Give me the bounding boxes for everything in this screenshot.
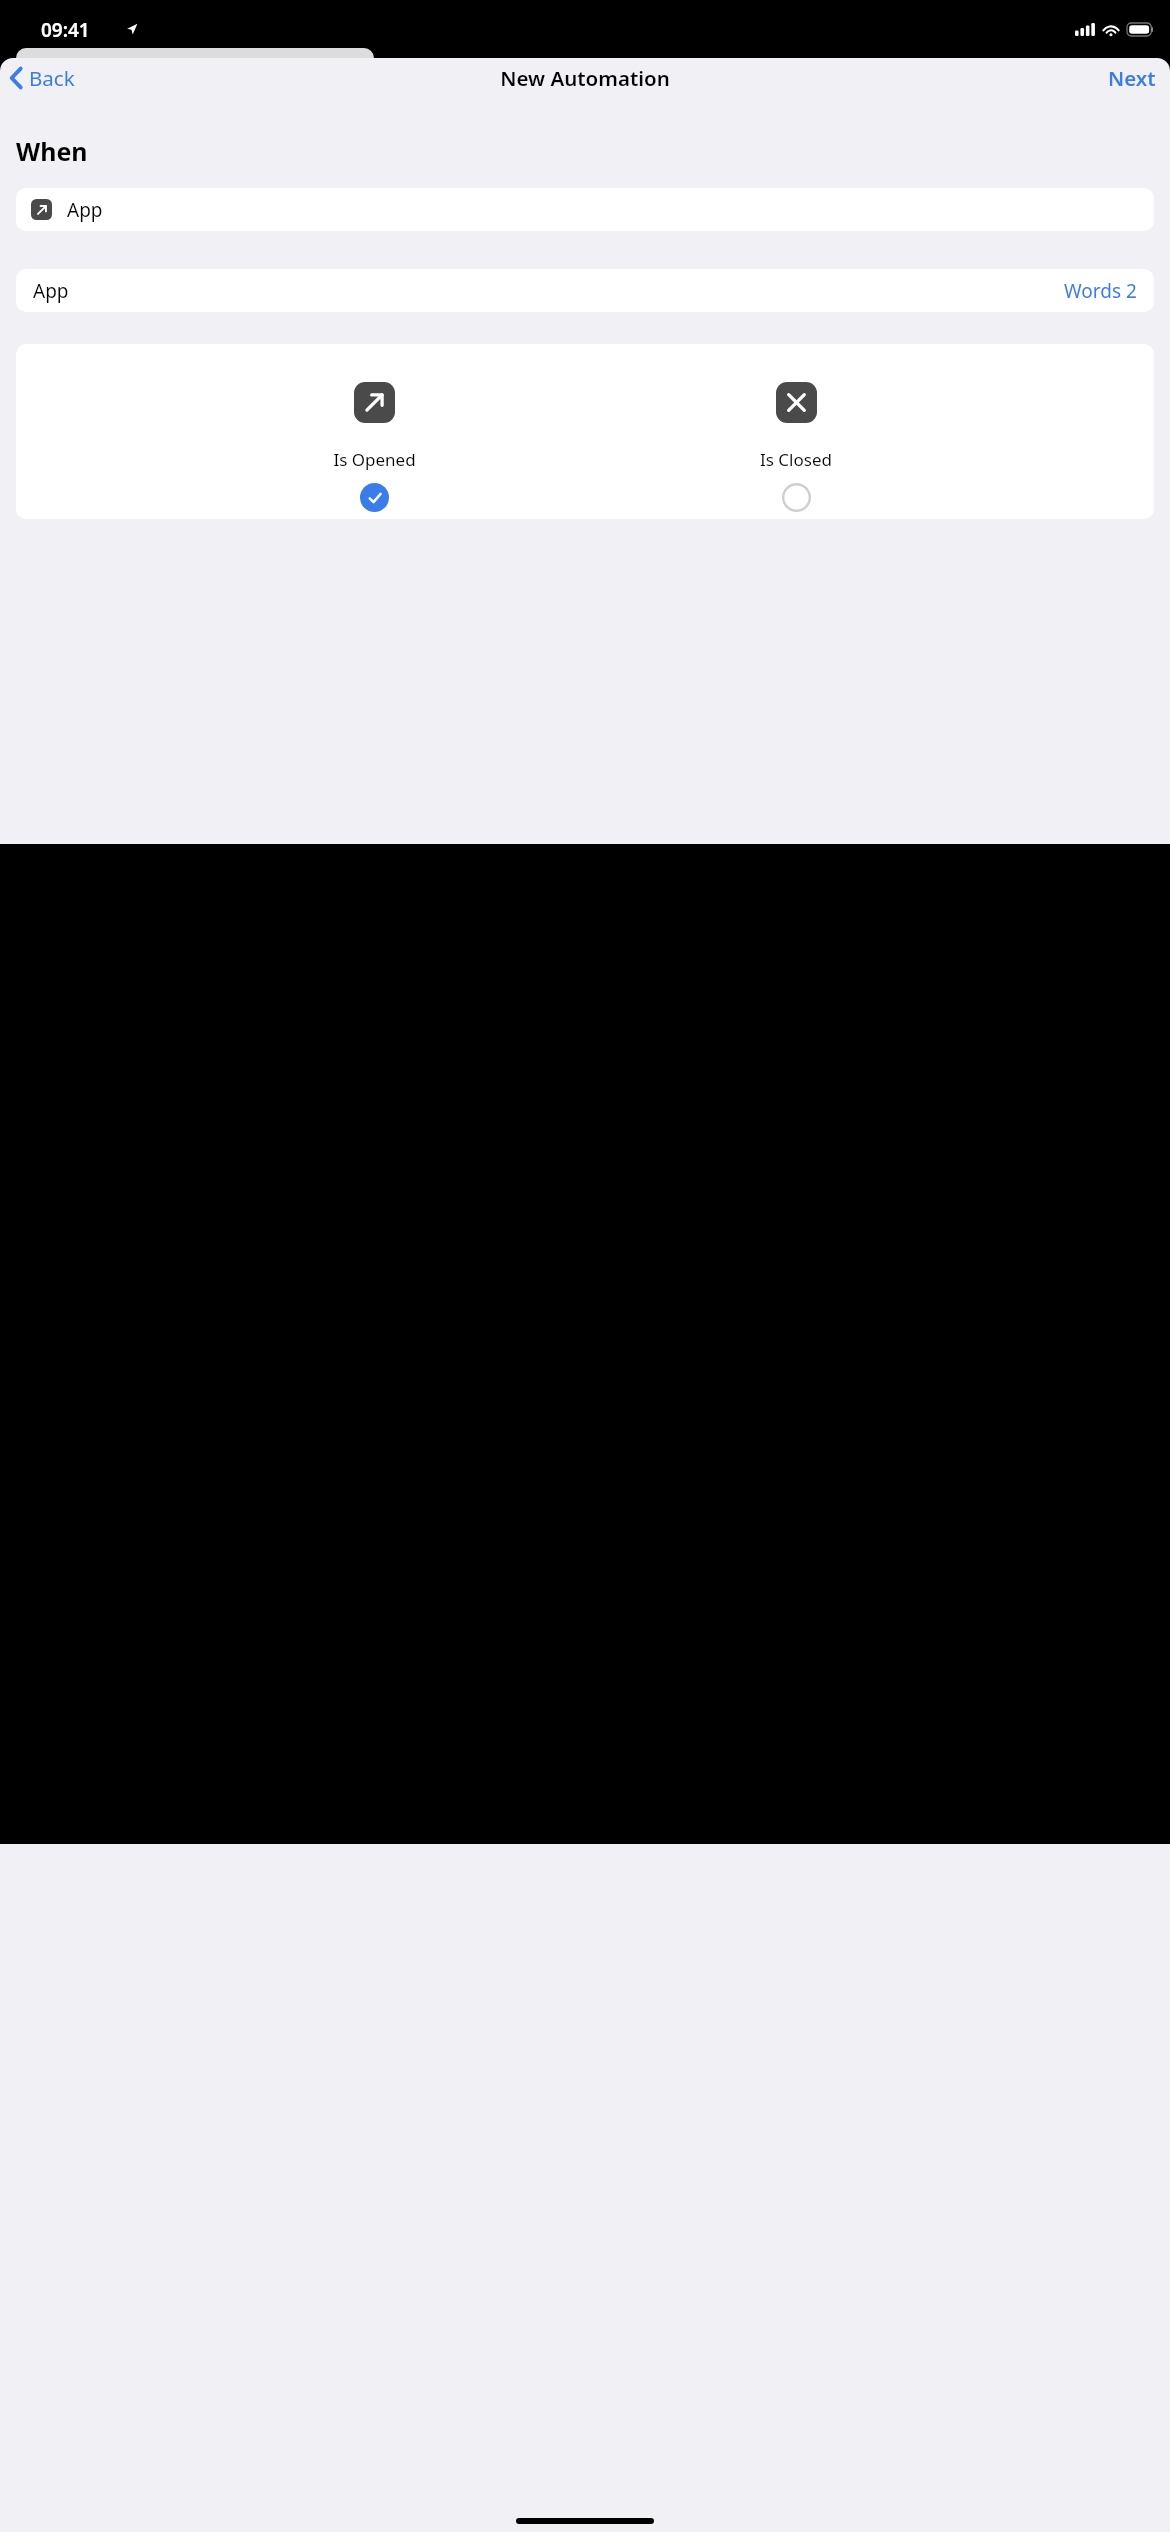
button[interactable]: App [16, 188, 1154, 231]
button[interactable]: App [16, 269, 1154, 312]
staticText: 09:41 [41, 17, 90, 43]
staticText: App [33, 278, 69, 304]
staticText: When [16, 134, 88, 168]
button[interactable]: Is Closed [721, 344, 871, 512]
staticText: New Automation [500, 64, 670, 92]
button[interactable]: Back [6, 60, 79, 96]
staticText: Is Opened [333, 448, 416, 471]
staticText: Words 2 [1064, 278, 1137, 304]
staticText: Back [29, 64, 75, 92]
staticText: Next [1108, 64, 1156, 92]
staticText: App [67, 197, 103, 223]
staticText: Is Closed [760, 448, 832, 471]
button[interactable]: Next [1104, 60, 1160, 96]
button[interactable]: Is Opened [299, 344, 449, 512]
